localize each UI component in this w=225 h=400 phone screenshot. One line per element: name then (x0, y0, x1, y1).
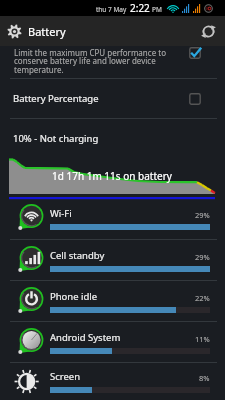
staticText: 29% (195, 252, 210, 262)
staticText: 10% - Not charging (13, 132, 99, 145)
staticText: 8% (199, 373, 210, 383)
staticText: 1d 17h 1m 11s on battery (52, 169, 172, 183)
staticText: Phone idle (50, 290, 98, 303)
button[interactable]: Android System (0, 322, 225, 362)
staticText: Battery Percentage (13, 92, 189, 105)
staticText: Screen (50, 370, 81, 383)
button[interactable]: Battery Percentage (0, 79, 225, 118)
button[interactable]: Screen (0, 363, 225, 400)
staticText: 29% (195, 210, 210, 220)
staticText: Limit the maximum CPU performance to con… (14, 47, 189, 75)
staticText: 2:22 (130, 1, 150, 15)
staticText: 22% (195, 293, 210, 303)
staticText: 11% (195, 334, 210, 344)
button[interactable]: Limit the maximum CPU performance to con… (0, 47, 225, 78)
staticText: Battery (28, 24, 66, 39)
staticText: thu 7 May (96, 5, 127, 14)
staticText: Wi-Fi (50, 207, 72, 220)
button[interactable]: Settings (7, 24, 22, 39)
staticText: Cell standby (50, 249, 105, 262)
button[interactable]: Refresh (200, 23, 217, 40)
button[interactable]: Phone idle (0, 281, 225, 321)
staticText: Android System (50, 331, 121, 344)
button[interactable]: Cell standby (0, 240, 225, 280)
staticText: PM (152, 5, 162, 14)
button[interactable]: Wi-Fi (0, 198, 225, 239)
